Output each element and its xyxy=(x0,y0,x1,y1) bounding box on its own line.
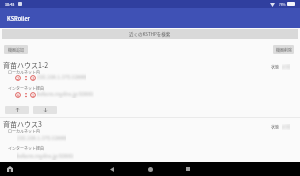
button[interactable]: 機器追加 xyxy=(4,45,28,54)
staticText: 育苗ハウス1-2 xyxy=(3,60,49,70)
staticText: ksfarm.mydns.jp:50001 xyxy=(37,90,94,98)
staticText: 3 xyxy=(32,76,35,81)
button[interactable]: Move up xyxy=(5,106,29,114)
staticText: ローカルネット内 xyxy=(8,128,40,134)
staticText: 機器追加 xyxy=(8,47,24,53)
staticText: 18:43 xyxy=(5,2,15,7)
staticText: 78% xyxy=(279,2,286,7)
staticText: インターネット経由 xyxy=(8,85,44,91)
button[interactable]: Move down xyxy=(33,106,57,114)
staticText: 1 xyxy=(32,93,35,98)
staticText: 状態 xyxy=(271,124,279,130)
button[interactable]: 近くのKSTHPを検索 xyxy=(2,29,298,39)
staticText: ksfarm.mydns.jp:50001 xyxy=(17,152,74,160)
button[interactable]: Home xyxy=(140,162,160,176)
staticText: 192.168.1.175:12888 xyxy=(17,134,66,142)
button[interactable]: Back xyxy=(102,162,122,176)
staticText: 2 xyxy=(17,76,20,81)
staticText: 機器削除 xyxy=(276,47,292,53)
staticText: KSRoller xyxy=(7,15,30,23)
button[interactable]: Recents xyxy=(178,162,198,176)
staticText: 近くのKSTHPを検索 xyxy=(129,31,171,38)
staticText: ローカルネット内 xyxy=(8,69,40,75)
staticText: 育苗ハウス3 xyxy=(3,119,42,129)
staticText: 正常 xyxy=(282,124,290,130)
button[interactable]: 機器削除 xyxy=(273,45,294,54)
button[interactable]: 育苗ハウス1-2 xyxy=(0,56,300,116)
staticText: インターネット経由 xyxy=(8,145,44,151)
staticText: 192.168.1.175:12888 xyxy=(37,73,86,81)
staticText: 正常 xyxy=(282,64,290,70)
staticText: 6 xyxy=(17,93,20,98)
button[interactable]: Home shortcut xyxy=(4,163,16,175)
staticText: 状態 xyxy=(271,64,279,70)
button[interactable]: 育苗ハウス3 xyxy=(0,118,300,160)
